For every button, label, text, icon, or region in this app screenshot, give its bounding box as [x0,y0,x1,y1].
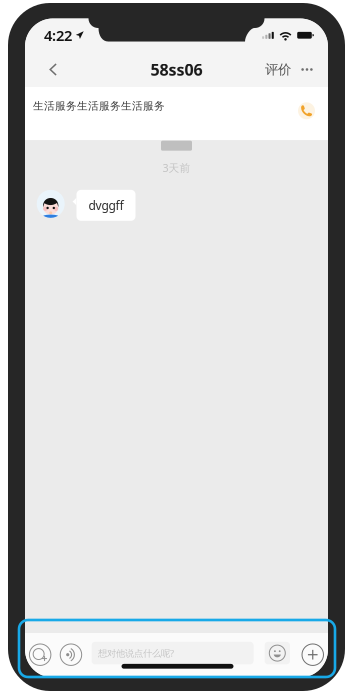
staticText: 评价 [265,61,291,78]
staticText: 4:22 [44,25,72,45]
button[interactable]: 生活服务生活服务生活服务 [25,87,328,140]
button[interactable]: More options [299,641,326,668]
staticText: dvggff [88,197,123,213]
button[interactable]: More [296,52,318,87]
staticText: 想对他说点什么呢? [98,647,174,659]
staticText: 58ss06 [150,59,202,80]
button[interactable]: Voice message [57,641,84,668]
button[interactable]: 评价 [264,52,292,87]
staticText: 生活服务生活服务生活服务 [33,99,165,113]
staticText: 3天前 [162,161,190,175]
button[interactable]: 想对他说点什么呢? [92,642,254,664]
button[interactable]: Emoji [265,642,290,664]
button[interactable]: Add photo [27,641,54,668]
button[interactable]: Back [36,52,70,87]
